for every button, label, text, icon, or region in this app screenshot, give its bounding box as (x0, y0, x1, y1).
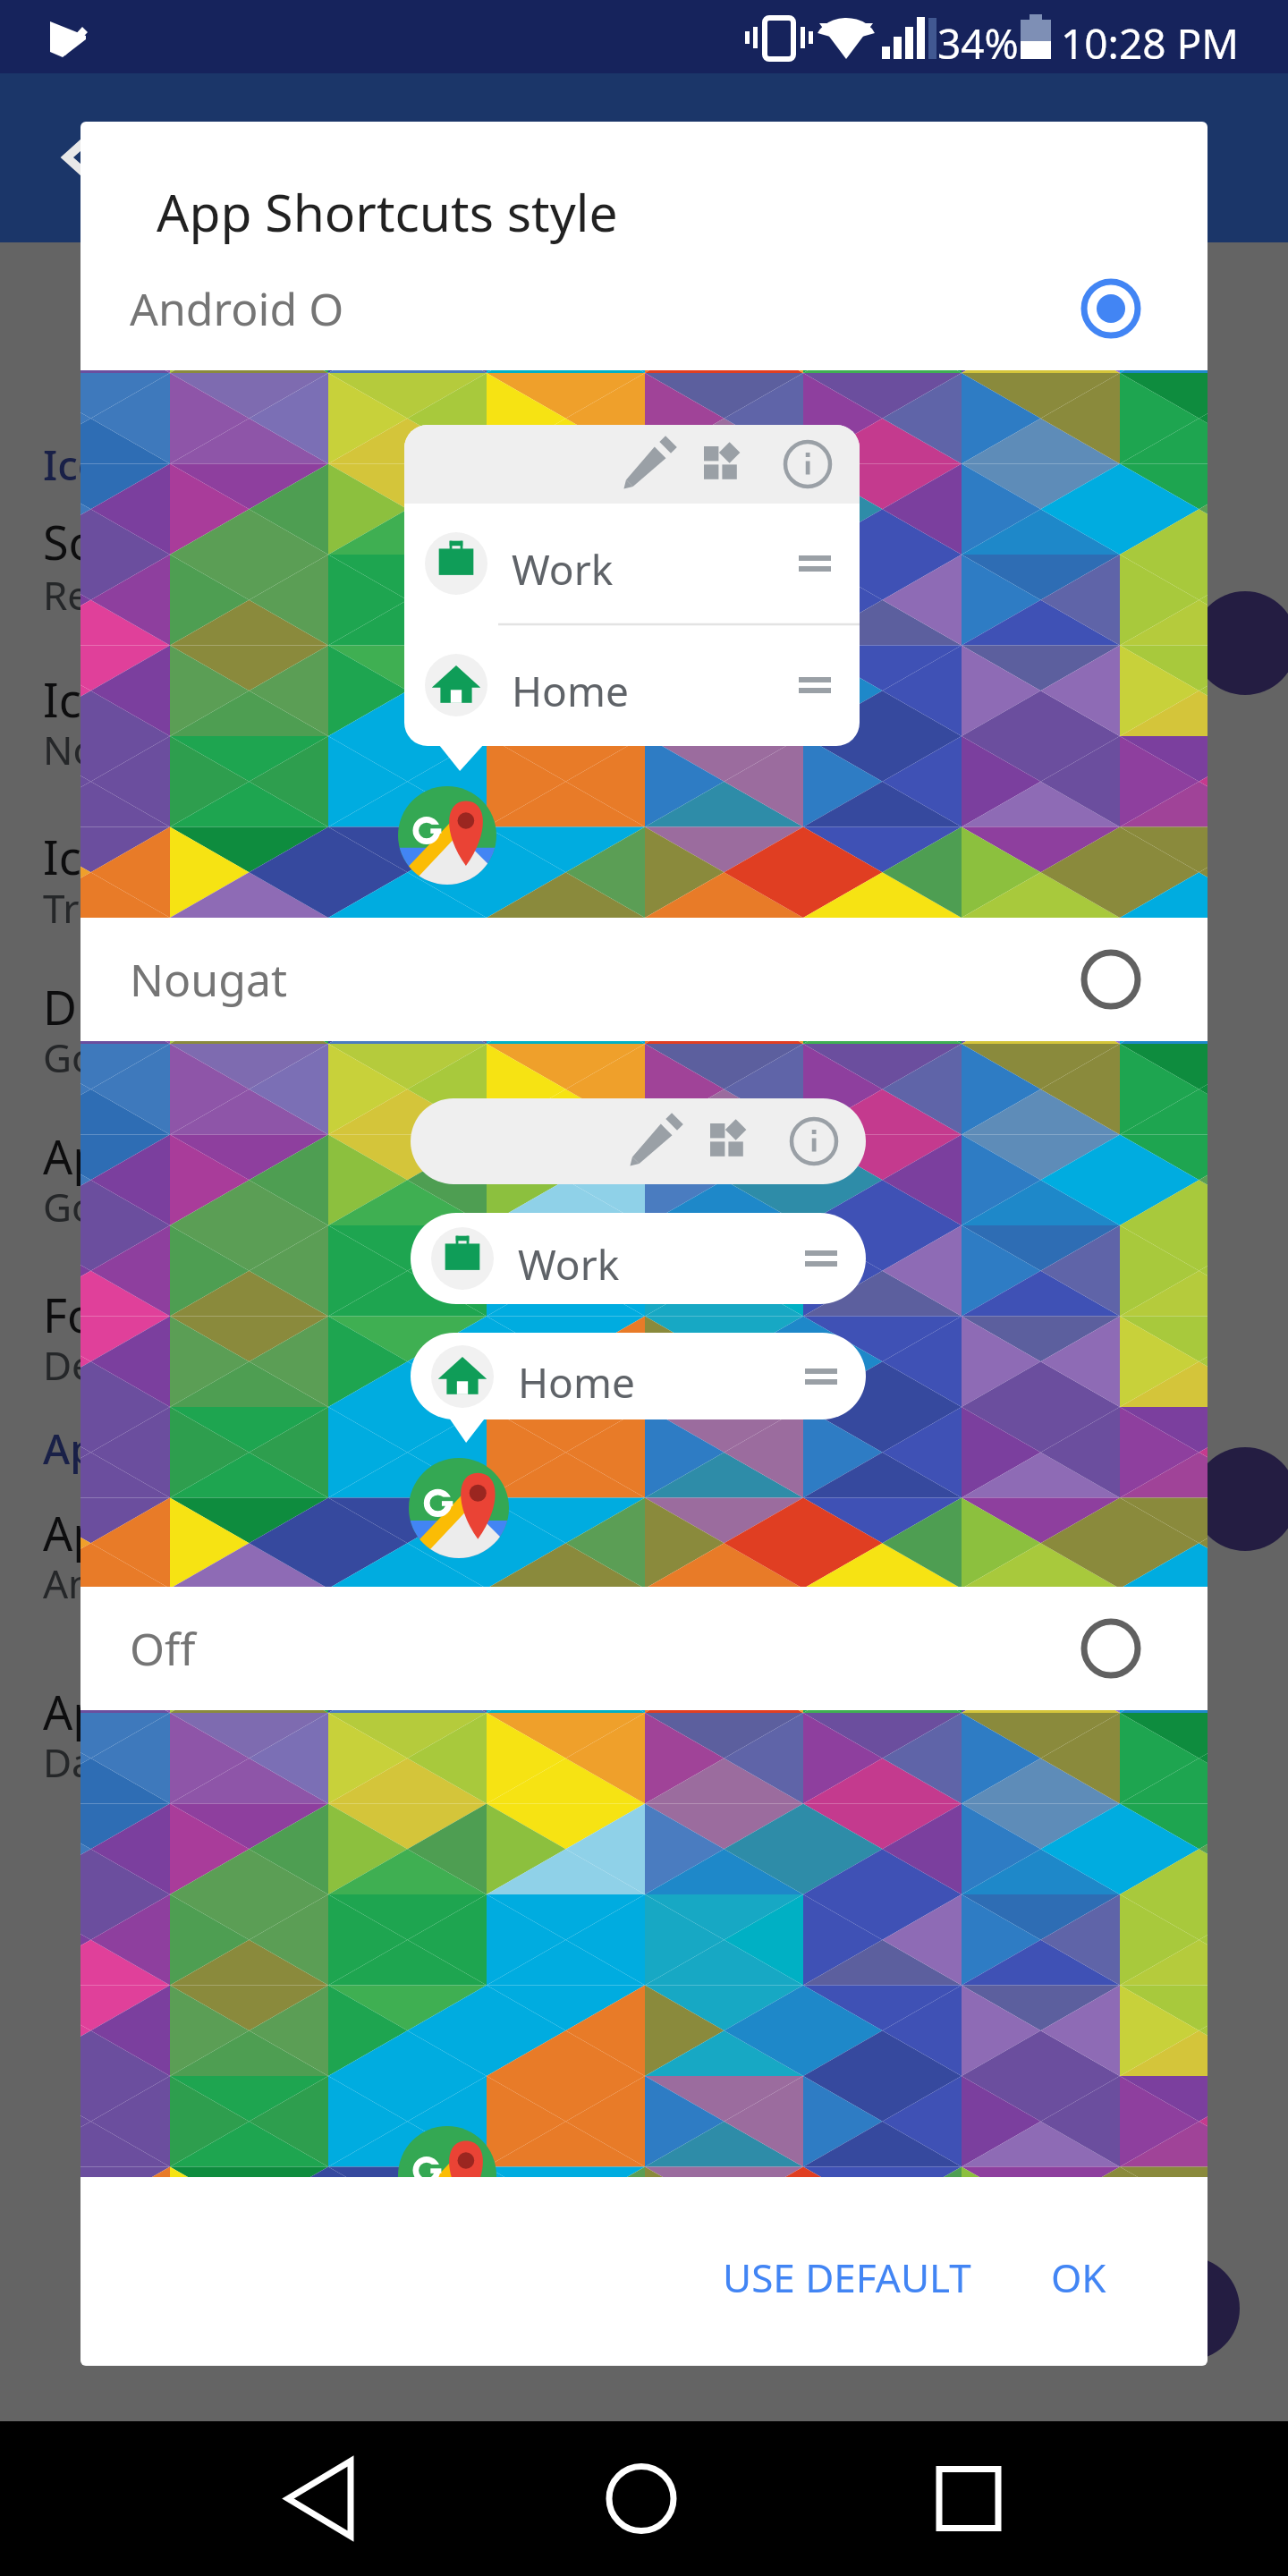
staticText: App Shortcuts (43, 1420, 320, 1477)
staticText: Nougat (130, 949, 287, 1010)
staticText: Folder preview (43, 1283, 363, 1346)
staticText: Icon size (43, 667, 233, 731)
other: Not selected (1075, 944, 1147, 1015)
staticText: App Shortcuts style (43, 1501, 464, 1564)
staticText: Drawer (43, 975, 204, 1038)
staticText: 10:28 PM (1061, 15, 1240, 72)
staticText: Icon pack (43, 436, 232, 493)
staticText: Sort (43, 510, 133, 573)
staticText: Work (518, 1236, 620, 1292)
staticText: Default (43, 1338, 179, 1392)
staticText: Off (130, 1618, 196, 1679)
staticText: Revert to default order (43, 568, 463, 622)
staticText: Android O (43, 1556, 232, 1610)
staticText: App icons (43, 1124, 256, 1188)
staticText: Work (512, 541, 614, 597)
other: Not selected (1075, 1613, 1147, 1684)
staticText: Android O (130, 278, 344, 339)
staticText: Dark (43, 1735, 131, 1789)
button[interactable]: OK (1024, 2227, 1133, 2327)
staticText: Normal (43, 723, 182, 776)
button[interactable]: Android O (80, 247, 1207, 370)
staticText: Google Now cards (43, 1030, 380, 1084)
staticText: App Shortcuts color (43, 1680, 473, 1743)
staticText: Icon label (43, 825, 256, 888)
button[interactable]: Nougat (80, 918, 1207, 1041)
staticText: Truncate to one line (43, 881, 411, 935)
other: Back (41, 125, 106, 190)
other: Selected (1075, 273, 1147, 344)
staticText: Home (512, 663, 629, 719)
button[interactable]: Off (80, 1587, 1207, 1710)
staticText: App Shortcuts style (157, 177, 618, 247)
staticText: Google (43, 1180, 176, 1233)
staticText: 34% (937, 15, 1019, 72)
staticText: Home (518, 1354, 635, 1411)
button[interactable]: USE DEFAULT (696, 2227, 998, 2327)
